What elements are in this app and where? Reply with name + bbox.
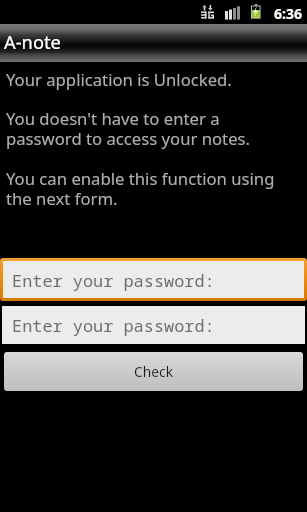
staticText: Enter your password:: [12, 269, 215, 292]
button[interactable]: Check: [4, 352, 303, 391]
staticText: Check: [134, 362, 174, 381]
staticText: Your application is Unlocked. You doesn'…: [6, 68, 275, 210]
staticText: 6:36: [274, 4, 302, 23]
button[interactable]: Enter your password:: [2, 306, 305, 344]
staticText: Enter your password:: [12, 314, 215, 337]
staticText: A-note: [4, 29, 61, 54]
button[interactable]: Enter your password:: [0, 258, 307, 301]
